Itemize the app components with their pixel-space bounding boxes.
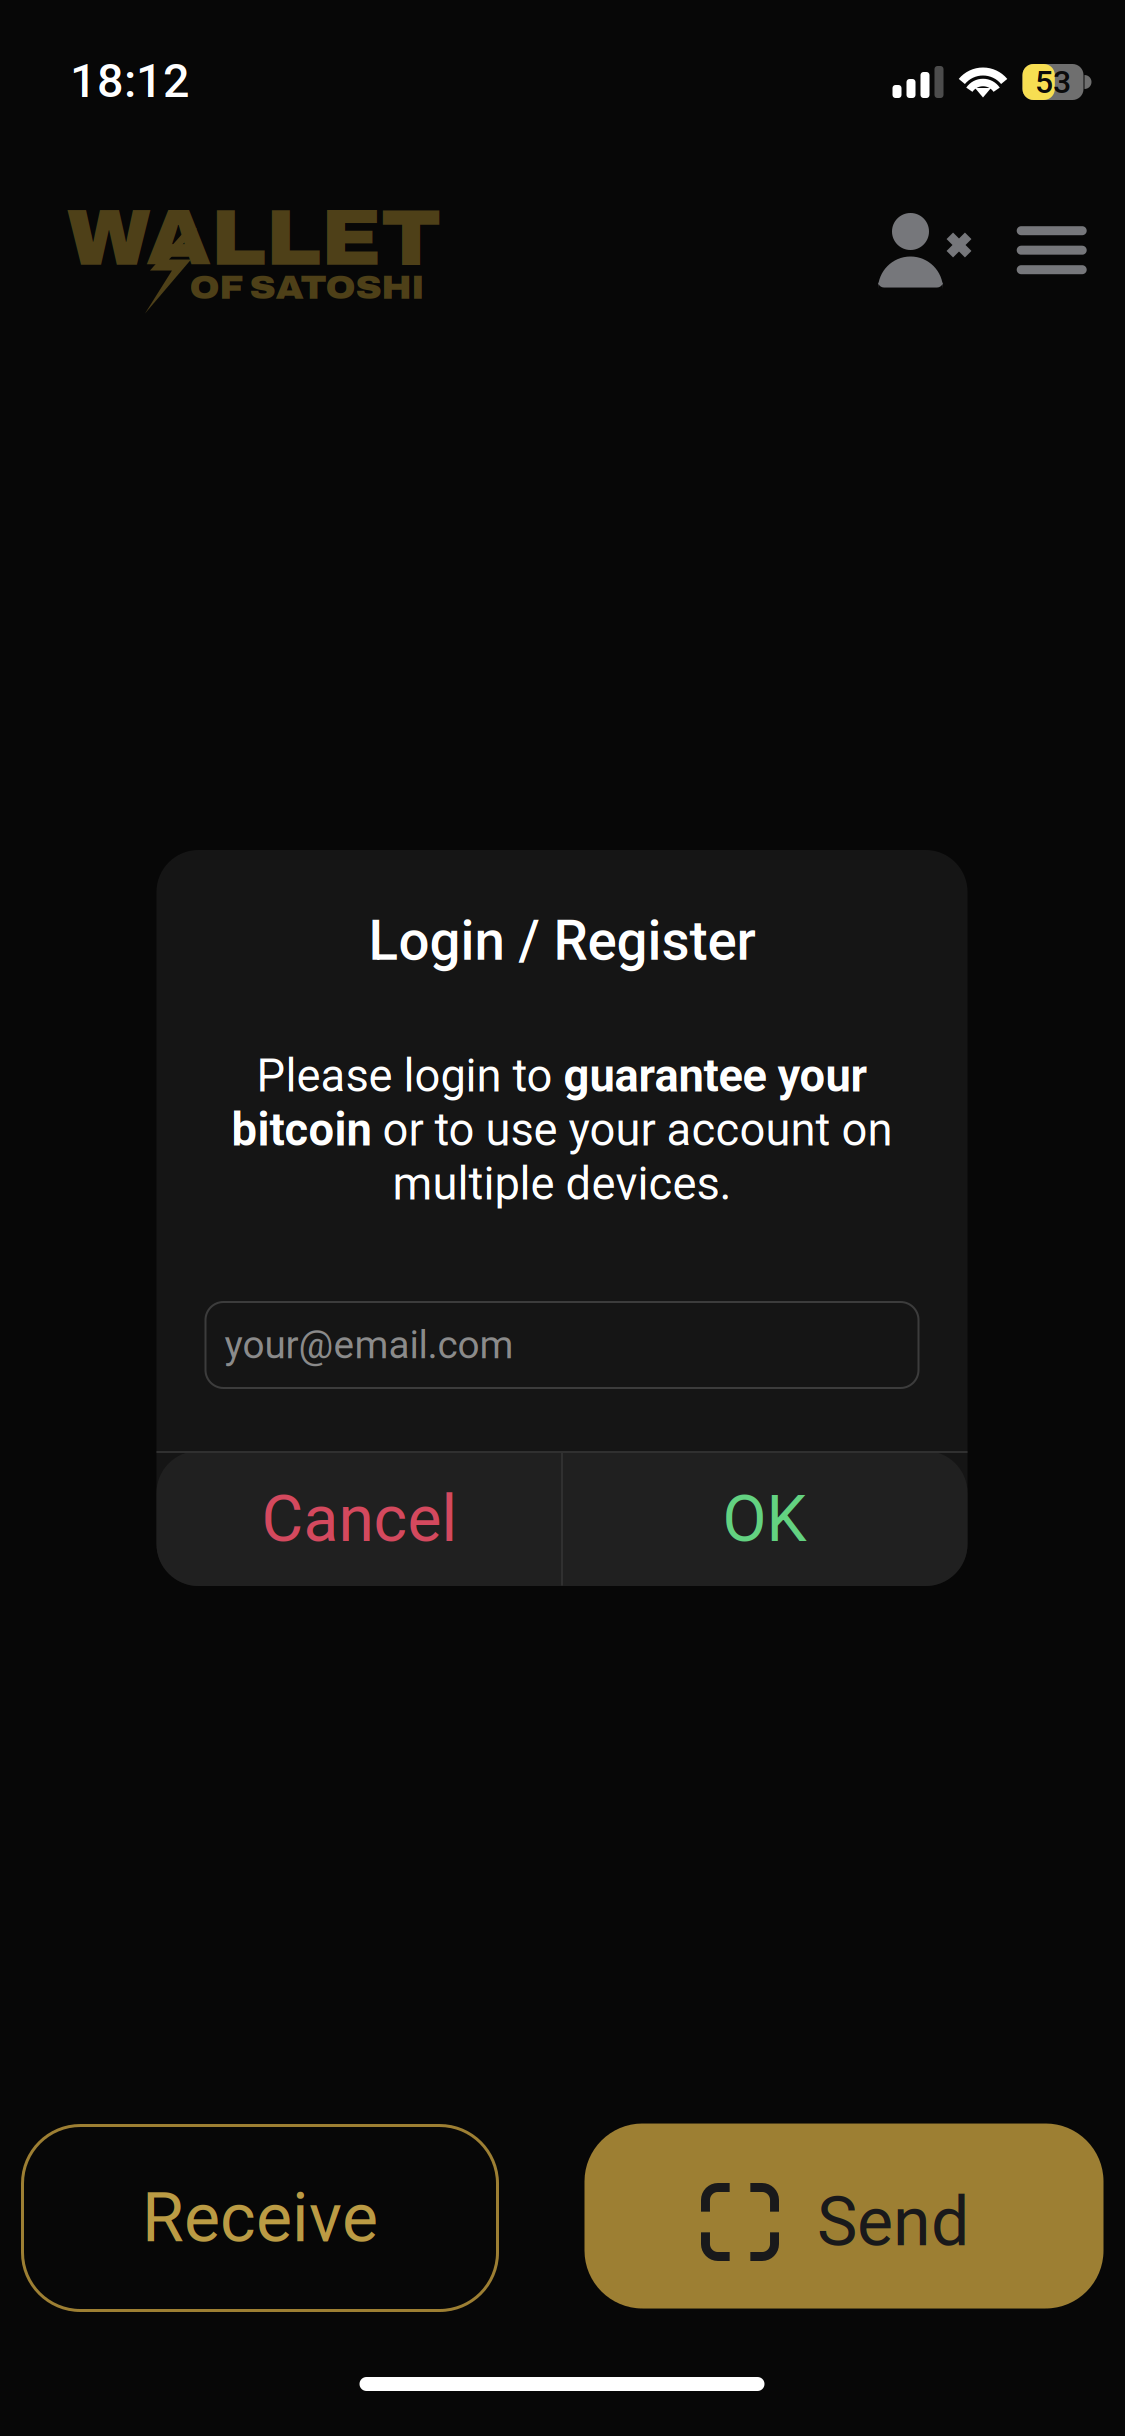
staticText: Receive [142, 2178, 378, 2258]
staticText: Cancel [261, 1481, 457, 1556]
button[interactable]: Send [584, 2123, 1103, 2308]
staticText: OF SATOSHI [189, 269, 424, 306]
button[interactable]: Cancel [157, 1452, 561, 1585]
staticText: 18:12 [70, 54, 190, 108]
staticText: Send [817, 2182, 969, 2262]
staticText: WALLET [67, 196, 441, 281]
staticText: bitcoin [231, 1103, 371, 1156]
button[interactable]: Receive [22, 2125, 497, 2310]
staticText: your@email.com [224, 1322, 513, 1368]
staticText: Please login to [256, 1049, 563, 1102]
button[interactable]: Account [878, 213, 972, 289]
staticText: multiple devices. [392, 1157, 731, 1210]
staticText: Login / Register [368, 909, 755, 973]
button[interactable]: Menu [1017, 226, 1087, 274]
staticText: 53 [1035, 63, 1071, 101]
staticText: OK [722, 1481, 806, 1556]
button[interactable]: OK [562, 1452, 966, 1585]
staticText: or to use your account on [371, 1103, 892, 1156]
staticText: guarantee your [563, 1049, 867, 1102]
